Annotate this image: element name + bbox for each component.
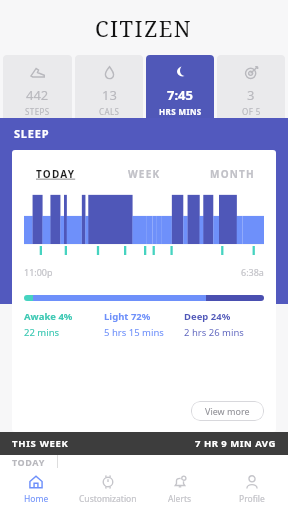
staticText: Awake 4% [24, 310, 73, 323]
button[interactable]: 3 [217, 55, 285, 118]
staticText: CALS [99, 106, 120, 117]
button[interactable]: 7:45 [146, 55, 214, 118]
staticText: Light 72% [104, 310, 151, 323]
staticText: View more [205, 405, 250, 417]
staticText: WEEK [128, 167, 161, 181]
staticText: Deep 24% [184, 310, 231, 323]
button[interactable]: Profile [216, 468, 288, 512]
button[interactable]: WEEK [100, 167, 188, 181]
staticText: TODAY [12, 456, 45, 468]
staticText: 2 hrs 26 mins [184, 326, 244, 339]
staticText: MONTH [210, 167, 255, 181]
staticText: 442 [26, 86, 49, 104]
staticText: Profile [239, 493, 265, 505]
staticText: 13 [102, 86, 117, 104]
staticText: 22 mins [24, 326, 60, 339]
staticText: 6:38a [241, 266, 264, 278]
button[interactable]: THIS WEEK [0, 432, 288, 455]
staticText: OF 5 [242, 106, 261, 117]
staticText: 3 [247, 86, 255, 104]
staticText: 5 hrs 15 mins [104, 326, 164, 339]
staticText: Alerts [168, 493, 192, 505]
staticText: 11:00p [24, 266, 53, 278]
staticText: TODAY [36, 167, 76, 181]
staticText: Customization [79, 493, 137, 505]
button[interactable]: View more [191, 401, 264, 421]
staticText: 7 HR 9 MIN AVG [195, 437, 276, 450]
button[interactable]: 13 [75, 55, 143, 118]
button[interactable]: Alerts [144, 468, 216, 512]
staticText: HRS MINS [159, 106, 202, 117]
button[interactable]: TODAY [12, 167, 100, 181]
staticText: SLEEP [14, 126, 50, 141]
staticText: STEPS [25, 106, 50, 117]
button[interactable]: MONTH [188, 167, 276, 181]
button[interactable]: Home [0, 468, 72, 512]
staticText: 7:45 [167, 86, 193, 104]
staticText: Home [24, 493, 49, 505]
staticText: CITIZEN [95, 13, 193, 43]
staticText: THIS WEEK [12, 437, 69, 450]
button[interactable]: Customization [72, 468, 144, 512]
button[interactable]: 442 [3, 55, 72, 118]
